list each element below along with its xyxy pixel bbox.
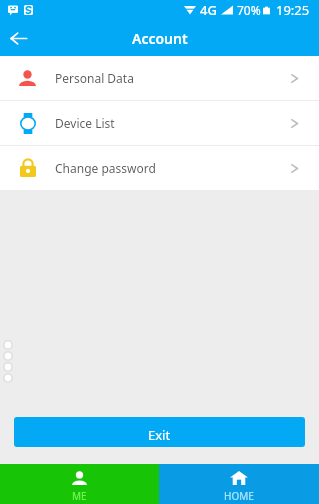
staticText: 4G (200, 1, 217, 19)
staticText: Change password (55, 160, 156, 176)
staticText: 70% (237, 2, 261, 18)
staticText: HOME (224, 489, 254, 503)
button[interactable]: Exit (14, 417, 305, 447)
staticText: Exit (148, 426, 171, 444)
button[interactable]: Personal Data (0, 56, 319, 100)
button[interactable]: Device List (0, 101, 319, 145)
staticText: Device List (55, 115, 115, 131)
button[interactable]: ME (0, 464, 159, 504)
staticText: Account (132, 29, 188, 48)
button[interactable]: HOME (159, 464, 319, 504)
button[interactable]: Change password (0, 146, 319, 190)
staticText: 19:25 (276, 1, 310, 19)
staticText: ME (72, 489, 87, 503)
button[interactable]: Back (0, 20, 36, 56)
staticText: Personal Data (55, 70, 134, 86)
